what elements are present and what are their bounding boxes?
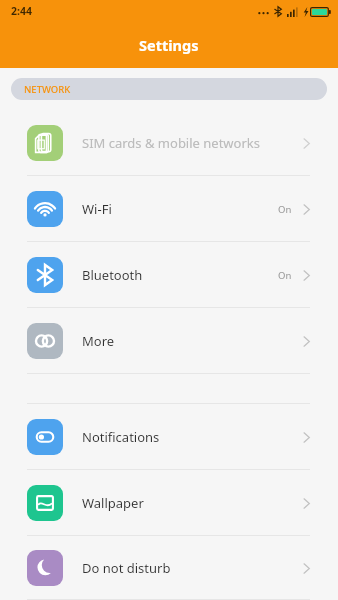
button[interactable]: Notifications xyxy=(0,404,338,470)
staticText: Notifications xyxy=(82,428,160,446)
button[interactable]: More xyxy=(0,308,338,374)
staticText: On xyxy=(278,203,292,216)
staticText: 2:44 xyxy=(11,4,32,18)
staticText: NETWORK xyxy=(24,83,71,96)
staticText: Settings xyxy=(139,35,199,55)
staticText: Do not disturb xyxy=(82,559,171,577)
button[interactable]: Wi-Fi xyxy=(0,176,338,242)
staticText: Wi-Fi xyxy=(82,200,112,218)
button[interactable]: SIM cards and mobile networks xyxy=(0,110,338,176)
staticText: On xyxy=(278,269,292,282)
button[interactable]: Do not disturb xyxy=(0,536,338,600)
staticText: SIM cards & mobile networks xyxy=(82,134,260,152)
button[interactable]: Bluetooth xyxy=(0,242,338,308)
staticText: More xyxy=(82,332,115,350)
staticText: Wallpaper xyxy=(82,494,144,512)
staticText: Bluetooth xyxy=(82,266,143,284)
button[interactable]: Wallpaper xyxy=(0,470,338,536)
